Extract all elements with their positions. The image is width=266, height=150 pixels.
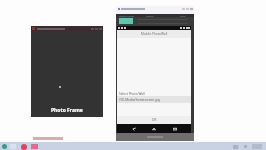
staticText: OK	[152, 118, 157, 122]
staticText: Type	[180, 14, 186, 17]
staticText: Device Name	[119, 14, 134, 17]
staticText: Mobile PhotoWall	[141, 32, 168, 36]
button[interactable]: /SD-Media/homescreen.jpg	[117, 96, 191, 103]
staticText: Photo Frame	[51, 107, 83, 114]
staticText: Select Photo Wall	[119, 92, 145, 96]
button[interactable]: Recents	[171, 125, 179, 133]
button[interactable]: App 1	[2, 144, 7, 149]
button[interactable]: App 3	[21, 144, 27, 150]
button[interactable]: Back	[130, 125, 138, 133]
staticText: Details	[146, 14, 154, 17]
button[interactable]: OK	[117, 116, 191, 124]
button[interactable]: Home	[150, 125, 158, 133]
staticText: /SD-Media/homescreen.jpg	[119, 98, 160, 102]
